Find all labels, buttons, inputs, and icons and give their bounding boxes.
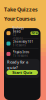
staticText: Your Courses bbox=[4, 15, 36, 22]
button[interactable]: Physics Intro bbox=[4, 49, 40, 59]
staticText: Start Quiz bbox=[12, 70, 32, 75]
staticText: 8 lessons bbox=[12, 44, 25, 47]
staticText: Physics Intro bbox=[12, 50, 29, 54]
staticText: 15 lessons bbox=[12, 54, 27, 57]
staticText: Ready for a quiz? bbox=[7, 59, 28, 70]
staticText: Biology Basics bbox=[12, 26, 23, 33]
staticText: New bbox=[31, 31, 37, 35]
button[interactable]: Start Quiz bbox=[6, 70, 38, 75]
button[interactable]: Biology Basics bbox=[4, 28, 40, 38]
staticText: Chemistry 101 bbox=[12, 40, 33, 43]
button[interactable]: Chemistry 101 bbox=[4, 39, 40, 49]
staticText: Take Quizzes bbox=[4, 6, 38, 13]
staticText: 12 lessons bbox=[12, 33, 22, 40]
